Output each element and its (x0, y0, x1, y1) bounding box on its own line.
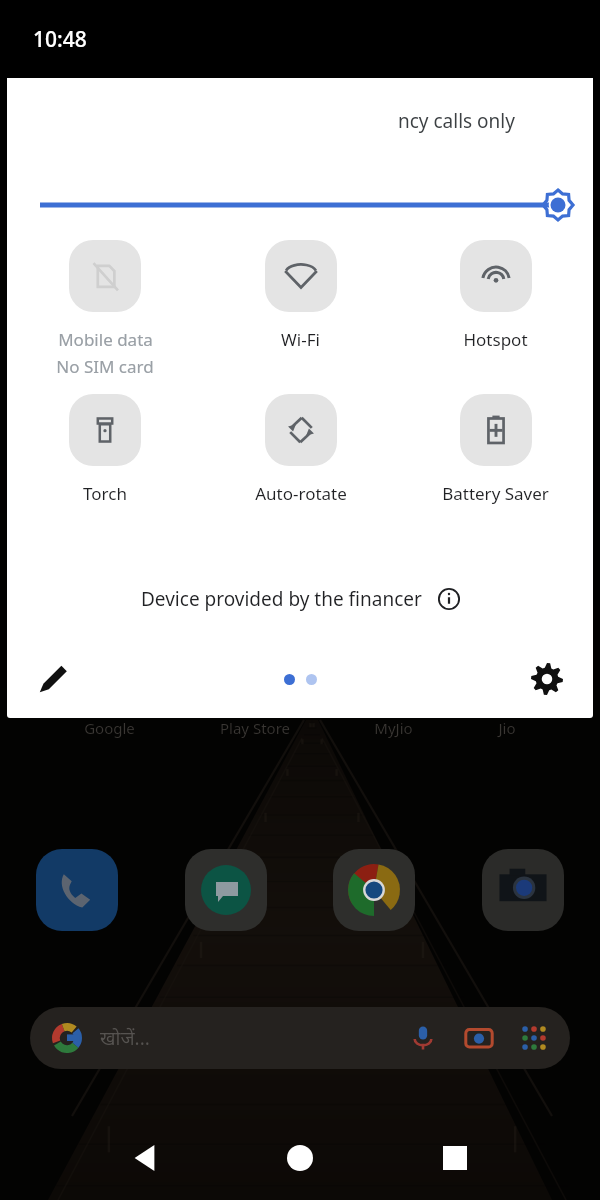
staticText: ncy calls only (398, 108, 515, 134)
staticText: 10:48 (33, 25, 87, 54)
staticText: Hotspot (463, 328, 528, 351)
staticText: Google (84, 718, 135, 738)
staticText: Device provided by the financer (141, 586, 422, 612)
staticText: Battery Saver (442, 482, 549, 505)
button[interactable]: Brightness (7, 178, 593, 232)
staticText: No SIM card (56, 355, 154, 378)
button[interactable]: Home (273, 1131, 327, 1185)
button[interactable]: Auto-rotate (203, 390, 398, 509)
button[interactable]: Wi-Fi (203, 236, 398, 355)
button[interactable]: Torch (7, 390, 203, 509)
staticText: Torch (83, 482, 127, 505)
staticText: Jio (498, 718, 516, 738)
button[interactable]: Battery Saver (398, 390, 593, 509)
staticText: Auto-rotate (255, 482, 347, 505)
button[interactable]: Edit (27, 653, 79, 705)
button[interactable]: Chrome (333, 849, 415, 931)
button[interactable]: Hotspot (398, 236, 593, 355)
button[interactable]: Mobile data (7, 236, 203, 382)
button[interactable]: Device provided by the financer (7, 586, 593, 612)
button[interactable]: Settings (521, 653, 573, 705)
button[interactable]: Camera (482, 849, 564, 931)
staticText: Wi-Fi (281, 328, 320, 351)
button[interactable]: Phone (36, 849, 118, 931)
staticText: Mobile data (58, 328, 153, 351)
staticText: Play Store (220, 718, 290, 738)
staticText: खोजें... (100, 1025, 150, 1051)
button[interactable]: खोजें... (30, 1007, 570, 1069)
button[interactable]: Recents (428, 1131, 482, 1185)
button[interactable]: Back (118, 1131, 172, 1185)
staticText: MyJio (374, 718, 413, 738)
button[interactable]: Messages (185, 849, 267, 931)
